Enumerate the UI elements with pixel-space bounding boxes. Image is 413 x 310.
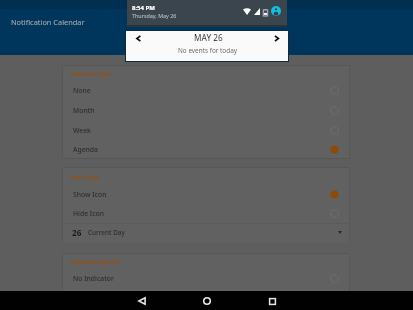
button[interactable]: Previous day — [129, 31, 147, 46]
button[interactable]: Agenda — [63, 139, 349, 159]
button[interactable]: Next day — [267, 31, 285, 46]
button[interactable]: Month — [63, 100, 349, 120]
staticText: 8:54 PM — [132, 4, 155, 12]
staticText: Calendar Type — [70, 70, 112, 78]
staticText: Current Day — [88, 228, 125, 237]
staticText: Thursday, May 26 — [132, 12, 177, 19]
staticText: Icon Style — [70, 173, 99, 181]
button[interactable]: 26 — [63, 224, 349, 243]
button[interactable]: Recent apps — [252, 291, 293, 310]
staticText: Notification Calendar — [11, 17, 85, 27]
button[interactable]: Hide Icon — [63, 203, 349, 223]
staticText: None — [73, 86, 91, 95]
staticText: Week — [73, 126, 91, 135]
staticText: No events for today — [178, 46, 238, 55]
staticText: Agenda — [73, 145, 98, 154]
staticText: MAY 26 — [194, 32, 223, 43]
staticText: Hide Icon — [73, 209, 104, 218]
button[interactable]: No Indicator — [63, 268, 349, 288]
staticText: No Indicator — [73, 274, 114, 283]
staticText: Month — [73, 106, 95, 115]
button[interactable]: Home — [186, 291, 227, 310]
button[interactable]: Back — [121, 291, 162, 310]
staticText: Calendar Options — [70, 258, 121, 266]
staticText: Show Icon — [73, 190, 107, 199]
staticText: 26 — [72, 227, 82, 238]
button[interactable]: Show Icon — [63, 184, 349, 204]
